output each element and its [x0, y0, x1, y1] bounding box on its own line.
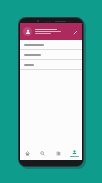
button[interactable]: Account avatar [23, 27, 32, 36]
button[interactable]: Library [50, 147, 66, 160]
button[interactable]: Edit account [71, 28, 79, 36]
button[interactable] [20, 50, 82, 60]
button[interactable] [20, 60, 82, 70]
button[interactable]: Home [20, 147, 35, 160]
button[interactable] [66, 147, 82, 160]
button[interactable]: Search [35, 147, 50, 160]
button[interactable] [20, 40, 82, 50]
